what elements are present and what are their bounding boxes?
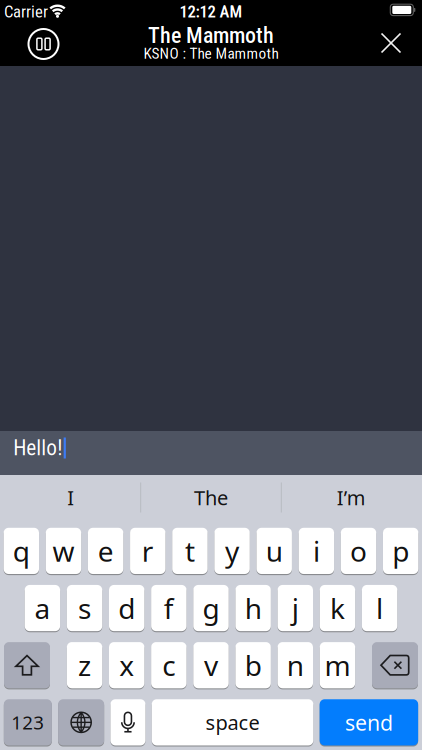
staticText: Carrier <box>4 2 48 21</box>
staticText: o <box>350 532 367 569</box>
staticText: f <box>164 589 174 627</box>
staticText: w <box>52 532 74 569</box>
staticText: a <box>34 589 50 627</box>
button[interactable]: Message text field <box>0 431 422 475</box>
staticText: KSNO : The Mammoth <box>143 44 278 62</box>
button[interactable]: Close <box>371 23 411 63</box>
button[interactable]: space <box>152 699 313 745</box>
button[interactable]: 123 <box>4 699 52 745</box>
button[interactable]: I <box>1 475 141 519</box>
staticText: x <box>119 647 134 684</box>
staticText: send <box>345 708 393 736</box>
staticText: n <box>287 647 304 684</box>
staticText: k <box>330 589 345 627</box>
button[interactable]: o <box>341 528 376 574</box>
staticText: space <box>205 709 259 736</box>
button[interactable]: k <box>320 585 355 631</box>
button[interactable]: x <box>109 642 144 688</box>
staticText: j <box>292 589 299 627</box>
staticText: The Mammoth <box>148 23 274 48</box>
staticText: d <box>118 589 135 627</box>
staticText: p <box>392 532 409 569</box>
staticText: I <box>67 484 74 511</box>
button[interactable]: d <box>109 585 144 631</box>
staticText: b <box>245 647 262 684</box>
button[interactable]: c <box>151 642 186 688</box>
staticText: m <box>324 647 350 684</box>
button[interactable]: r <box>130 528 165 574</box>
staticText: g <box>202 589 219 627</box>
button[interactable]: a <box>25 585 60 631</box>
button[interactable]: n <box>278 642 313 688</box>
staticText: h <box>245 589 262 627</box>
staticText: Hello! <box>13 435 62 460</box>
button[interactable]: s <box>67 585 102 631</box>
staticText: The <box>194 484 228 511</box>
button[interactable]: I’m <box>281 475 421 519</box>
staticText: v <box>204 647 218 684</box>
staticText: r <box>142 532 154 569</box>
button[interactable]: Pause <box>22 23 64 65</box>
button[interactable]: z <box>67 642 102 688</box>
button[interactable]: v <box>193 642 229 688</box>
staticText: s <box>78 589 91 627</box>
button[interactable]: t <box>172 528 208 574</box>
staticText: y <box>225 532 239 569</box>
staticText: l <box>376 589 383 627</box>
staticText: t <box>185 532 195 569</box>
button[interactable]: f <box>151 585 187 631</box>
button[interactable]: send <box>320 699 418 745</box>
button[interactable]: y <box>214 528 250 574</box>
button[interactable]: e <box>88 528 123 574</box>
button[interactable]: i <box>299 528 334 574</box>
staticText: 123 <box>11 710 44 735</box>
button[interactable]: w <box>46 528 81 574</box>
staticText: q <box>13 532 30 569</box>
staticText: z <box>78 647 91 684</box>
staticText: I’m <box>337 484 366 511</box>
staticText: 12:12 AM <box>179 2 242 21</box>
button[interactable]: g <box>193 585 229 631</box>
button[interactable]: The <box>141 475 281 519</box>
staticText: i <box>313 532 320 569</box>
button[interactable]: b <box>235 642 271 688</box>
button[interactable]: p <box>383 528 418 574</box>
staticText: e <box>98 532 114 569</box>
staticText: u <box>266 532 283 569</box>
button[interactable]: Next keyboard <box>58 699 104 745</box>
button[interactable]: Dictation <box>110 699 145 745</box>
button[interactable]: Shift <box>4 642 50 688</box>
button[interactable]: u <box>256 528 292 574</box>
button[interactable]: Delete <box>372 642 418 688</box>
button[interactable]: h <box>235 585 271 631</box>
button[interactable]: q <box>4 528 39 574</box>
button[interactable]: l <box>362 585 397 631</box>
staticText: c <box>162 647 175 684</box>
button[interactable]: m <box>320 642 355 688</box>
button[interactable]: j <box>278 585 313 631</box>
